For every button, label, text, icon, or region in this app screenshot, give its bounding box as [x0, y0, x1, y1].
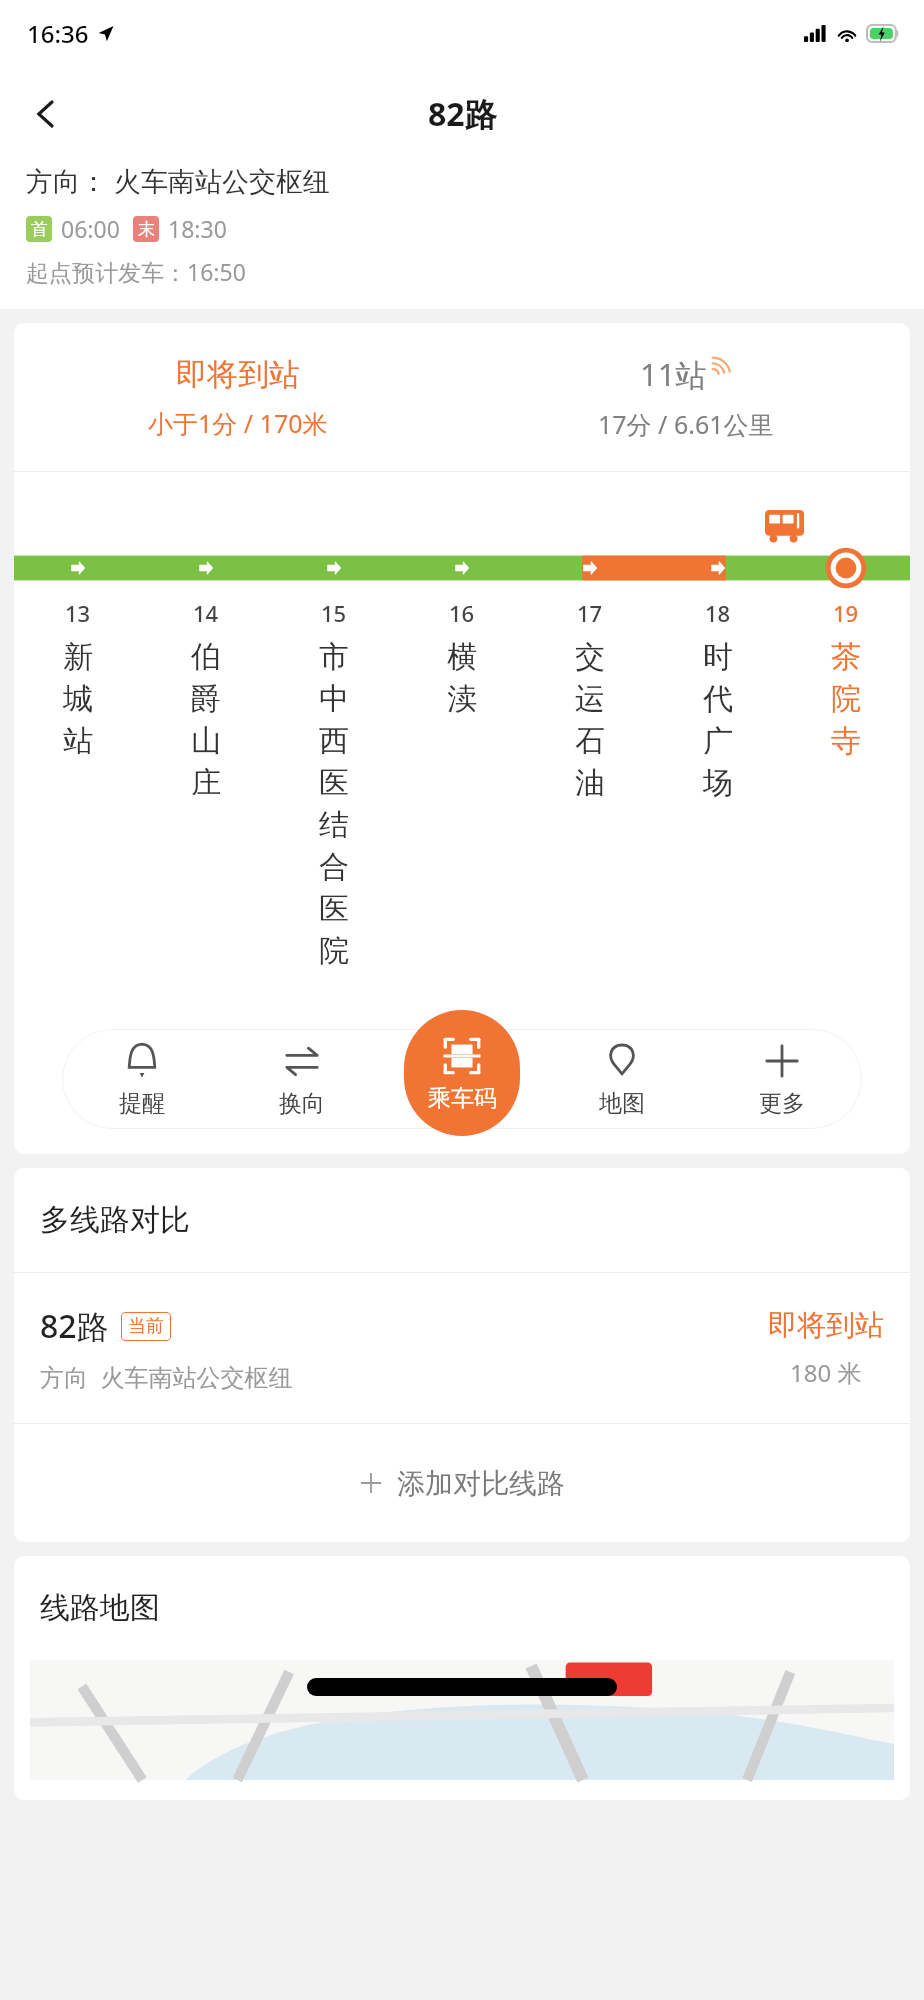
staticText: 庄 — [191, 764, 221, 806]
staticText: 提醒 — [119, 1089, 165, 1118]
staticText: 更多 — [759, 1089, 805, 1118]
staticText: 15 — [321, 598, 347, 628]
staticText: 中 — [319, 680, 349, 722]
button[interactable]: 13 — [14, 598, 142, 764]
staticText: 市 — [319, 638, 349, 680]
staticText: 石 — [575, 722, 605, 764]
staticText: 82路 — [428, 92, 497, 136]
button[interactable]: 添加对比线路 — [14, 1424, 910, 1542]
staticText: 14 — [193, 598, 219, 628]
button[interactable]: 17 — [526, 598, 654, 806]
staticText: 16:36 — [27, 17, 89, 50]
staticText: 起点预计发车：16:50 — [26, 256, 246, 287]
staticText: 11站 — [640, 353, 707, 395]
staticText: 爵 — [191, 680, 221, 722]
staticText: 广 — [703, 722, 733, 764]
staticText: 结 — [319, 806, 349, 848]
staticText: 时 — [703, 638, 733, 680]
staticText: 当前 — [128, 1315, 164, 1338]
staticText: 乘车码 — [428, 1084, 497, 1113]
staticText: 18 — [705, 598, 731, 628]
staticText: 首 — [31, 219, 48, 240]
button[interactable]: 82路 — [14, 1273, 910, 1423]
button[interactable]: Back — [14, 82, 78, 146]
staticText: 末 — [138, 219, 155, 240]
staticText: 茶 — [831, 638, 861, 680]
staticText: 场 — [703, 764, 733, 806]
staticText: 西 — [319, 722, 349, 764]
staticText: 新 — [63, 638, 93, 680]
staticText: 院 — [831, 680, 861, 722]
staticText: 19 — [833, 598, 859, 628]
staticText: 即将到站 — [176, 355, 300, 394]
staticText: 运 — [575, 680, 605, 722]
staticText: 即将到站 — [768, 1307, 884, 1344]
staticText: 代 — [703, 680, 733, 722]
button[interactable]: 19 — [782, 598, 910, 764]
button[interactable]: 提醒 — [62, 1029, 222, 1129]
staticText: 方向 火车南站公交枢纽 — [40, 1360, 293, 1393]
staticText: 添加对比线路 — [397, 1466, 565, 1501]
staticText: 换向 — [279, 1089, 325, 1118]
staticText: 多线路对比 — [40, 1201, 190, 1239]
button[interactable]: 16 — [398, 598, 526, 722]
button[interactable]: 换向 — [222, 1029, 382, 1129]
staticText: 城 — [63, 680, 93, 722]
staticText: 交 — [575, 638, 605, 680]
staticText: 伯 — [191, 638, 221, 680]
staticText: 18:30 — [168, 213, 227, 244]
button[interactable]: 地图 — [542, 1029, 702, 1129]
staticText: 渎 — [447, 680, 477, 722]
staticText: 13 — [65, 598, 91, 628]
staticText: 横 — [447, 638, 477, 680]
staticText: 17分 / 6.61公里 — [598, 407, 774, 441]
staticText: 医 — [319, 890, 349, 932]
staticText: 地图 — [599, 1089, 645, 1118]
button[interactable]: 18 — [654, 598, 782, 806]
button[interactable]: 更多 — [702, 1029, 862, 1129]
staticText: 站 — [63, 722, 93, 764]
staticText: 16 — [449, 598, 475, 628]
staticText: 油 — [575, 764, 605, 806]
staticText: 寺 — [831, 722, 861, 764]
staticText: 180 米 — [790, 1356, 862, 1389]
staticText: 医 — [319, 764, 349, 806]
button[interactable]: 即将到站 — [14, 323, 910, 471]
staticText: 合 — [319, 848, 349, 890]
button[interactable]: 乘车码 — [404, 1010, 520, 1136]
button[interactable]: 14 — [142, 598, 270, 806]
staticText: 院 — [319, 932, 349, 974]
staticText: 方向： 火车南站公交枢纽 — [26, 162, 331, 199]
staticText: 06:00 — [61, 213, 120, 244]
button[interactable]: 15 — [270, 598, 398, 974]
staticText: 17 — [577, 598, 603, 628]
staticText: 山 — [191, 722, 221, 764]
staticText: 82路 — [40, 1304, 109, 1348]
staticText: 小于1分 / 170米 — [148, 406, 328, 440]
button[interactable]: Route map — [30, 1660, 894, 1780]
staticText: 线路地图 — [40, 1589, 160, 1627]
